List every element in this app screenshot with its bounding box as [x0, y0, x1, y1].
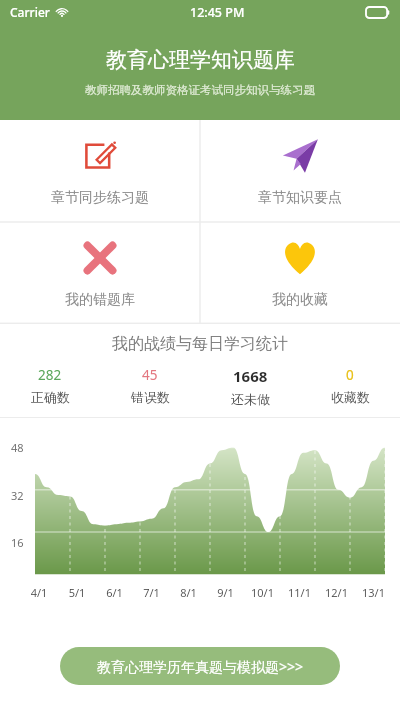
staticText: 我的战绩与每日学习统计 [0, 334, 400, 354]
staticText: 4/1 [20, 585, 58, 600]
staticText: 还未做 [231, 391, 270, 407]
staticText: 1668 [233, 366, 268, 386]
other: 我的收藏 [282, 240, 318, 276]
button[interactable]: 章节同步练习题 [0, 120, 200, 222]
staticText: 章节同步练习题 [51, 189, 149, 207]
other: 我的错题库 [81, 239, 119, 277]
button[interactable]: 我的错题库 [0, 222, 200, 324]
staticText: 教育心理学历年真题与模拟题>>> [97, 657, 304, 676]
button[interactable]: 教育心理学历年真题与模拟题>>> [60, 647, 340, 685]
staticText: 12/1 [318, 585, 355, 600]
staticText: Carrier [10, 4, 50, 20]
button[interactable]: 我的收藏 [200, 222, 400, 324]
staticText: 教育心理学知识题库 [106, 47, 295, 73]
staticText: 10/1 [244, 585, 281, 600]
staticText: 6/1 [96, 585, 133, 600]
staticText: 章节知识要点 [258, 189, 342, 207]
staticText: 11/1 [281, 585, 318, 600]
staticText: 282 [38, 366, 62, 384]
staticText: 12:45 PM [190, 4, 245, 21]
staticText: 7/1 [133, 585, 170, 600]
staticText: 收藏数 [331, 389, 370, 405]
staticText: 45 [142, 366, 158, 384]
staticText: 正确数 [31, 389, 70, 405]
staticText: 0 [346, 366, 354, 384]
staticText: 13/1 [355, 585, 392, 600]
staticText: 我的错题库 [65, 291, 135, 309]
staticText: 9/1 [207, 585, 244, 600]
staticText: 5/1 [58, 585, 96, 600]
staticText: 我的收藏 [272, 291, 328, 309]
staticText: 8/1 [170, 585, 207, 600]
staticText: 32 [11, 488, 24, 503]
other: 章节同步练习题 [83, 139, 117, 173]
staticText: 错误数 [131, 389, 170, 405]
staticText: 48 [11, 440, 24, 455]
other: 章节知识要点 [281, 137, 319, 175]
button[interactable]: 章节知识要点 [200, 120, 400, 222]
staticText: 教师招聘及教师资格证考试同步知识与练习题 [85, 83, 315, 97]
staticText: 16 [11, 535, 24, 550]
